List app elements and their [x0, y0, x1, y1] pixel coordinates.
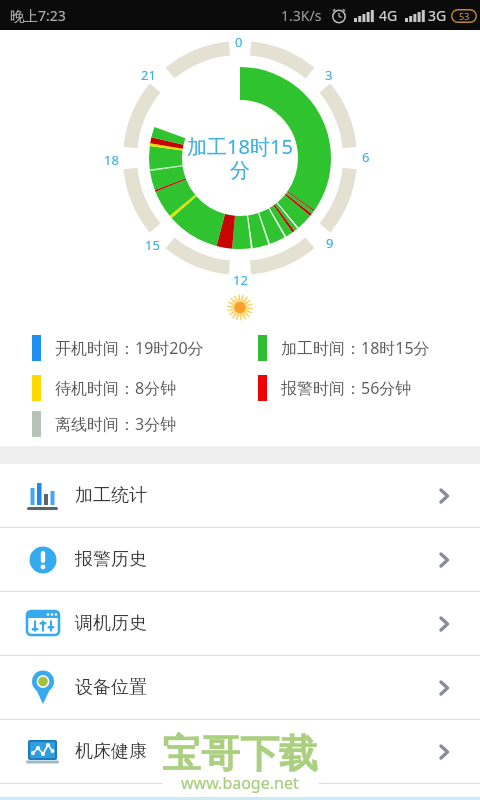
staticText: 15 — [145, 236, 160, 254]
staticText: 离线时间：3分钟 — [55, 413, 177, 435]
staticText: www.baoge.net — [181, 772, 299, 794]
staticText: 宝哥下载 — [162, 729, 318, 778]
staticText: 53 — [459, 10, 470, 22]
button[interactable]: 报警历史 — [0, 528, 480, 592]
staticText: 21 — [141, 66, 156, 84]
button[interactable]: 调机历史 — [0, 592, 480, 656]
staticText: 宝哥下载 — [162, 729, 318, 778]
staticText: 宝哥下载 — [162, 729, 318, 778]
staticText: www.baoge.net — [181, 772, 299, 794]
staticText: 设备位置 — [75, 676, 147, 699]
button[interactable]: 机床健康 — [0, 720, 480, 784]
button[interactable]: 加工统计 — [0, 464, 480, 528]
staticText: 3G — [428, 6, 447, 25]
staticText: 4G — [379, 6, 398, 25]
staticText: 开机时间：19时20分 — [55, 337, 204, 359]
staticText: 9 — [326, 234, 334, 252]
staticText: 报警时间：56分钟 — [281, 377, 412, 399]
staticText: 1.3K/s — [281, 6, 322, 25]
staticText: 宝哥下载 — [162, 729, 318, 778]
staticText: 加工18时15 分 — [187, 133, 293, 181]
staticText: 加工统计 — [75, 484, 147, 507]
staticText: www.baoge.net — [181, 772, 299, 794]
staticText: 晚上7:23 — [10, 6, 66, 25]
staticText: 宝哥下载 — [162, 729, 318, 778]
staticText: 18 — [104, 151, 119, 169]
staticText: 12 — [233, 271, 248, 289]
button[interactable]: 设备位置 — [0, 656, 480, 720]
staticText: 加工时间：18时15分 — [281, 337, 430, 359]
staticText: 调机历史 — [75, 612, 147, 635]
staticText: 待机时间：8分钟 — [55, 377, 177, 399]
staticText: www.baoge.net — [181, 772, 299, 794]
staticText: 报警历史 — [75, 548, 147, 571]
staticText: 3 — [325, 66, 333, 84]
staticText: 机床健康 — [75, 740, 147, 763]
staticText: 6 — [362, 148, 370, 166]
staticText: 0 — [235, 33, 243, 51]
